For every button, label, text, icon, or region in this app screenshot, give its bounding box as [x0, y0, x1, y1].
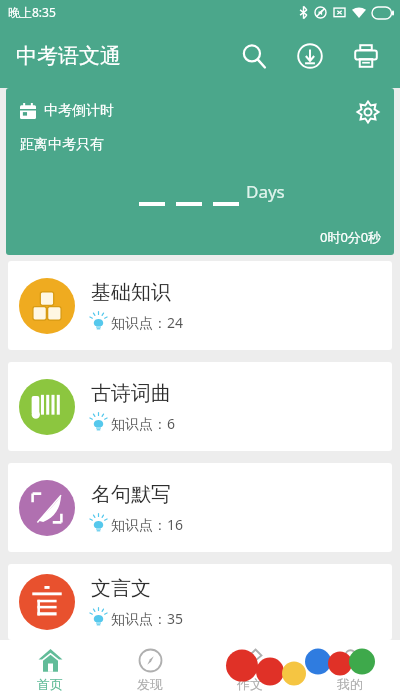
staticText: 我的	[337, 676, 363, 692]
staticText: 基础知识	[91, 280, 171, 305]
button[interactable]: 我的	[300, 642, 400, 698]
staticText: 知识点：6	[111, 414, 176, 433]
button[interactable]: 基础知识	[8, 261, 392, 350]
staticText: 知识点：35	[111, 609, 184, 628]
button[interactable]: 古诗词曲	[8, 362, 392, 451]
staticText: 距离中考只有	[20, 136, 104, 154]
staticText: 中考倒计时	[44, 102, 114, 120]
staticText: 首页	[37, 676, 63, 692]
button[interactable]: 名句默写	[8, 463, 392, 552]
staticText: 知识点：24	[111, 313, 184, 332]
staticText: 0时0分0秒	[320, 228, 382, 246]
staticText: 中考语文通	[16, 43, 121, 69]
button[interactable]: 首页	[0, 642, 100, 698]
button[interactable]: Download	[288, 34, 332, 78]
button[interactable]: 中考倒计时	[6, 88, 394, 255]
button[interactable]: 作文	[200, 642, 300, 698]
staticText: 晚上8:35	[8, 4, 56, 20]
staticText: 发现	[137, 676, 163, 692]
staticText: 名句默写	[91, 482, 171, 507]
staticText: 文言文	[91, 576, 151, 601]
staticText: 作文	[237, 676, 263, 692]
button[interactable]: 发现	[100, 642, 200, 698]
button[interactable]: 文言文	[8, 564, 392, 640]
staticText: 古诗词曲	[91, 381, 171, 406]
staticText: 知识点：16	[111, 515, 184, 534]
staticText: Days	[246, 180, 285, 203]
button[interactable]: Search	[232, 34, 276, 78]
button[interactable]: Settings	[350, 94, 386, 130]
button[interactable]: Print	[344, 34, 388, 78]
